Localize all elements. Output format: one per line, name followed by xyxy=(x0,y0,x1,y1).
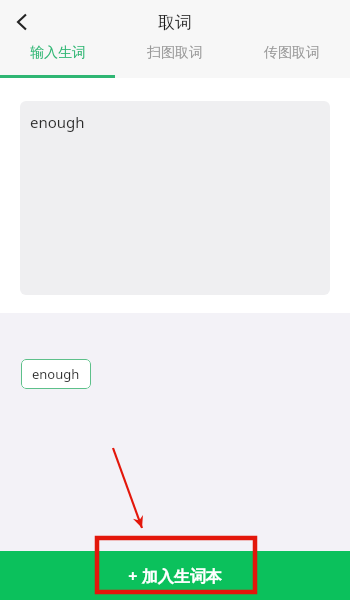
button[interactable]: enough xyxy=(21,359,91,389)
button[interactable]: 传图取词 xyxy=(233,44,350,62)
button[interactable]: 扫图取词 xyxy=(116,44,233,62)
staticText: 输入生词 xyxy=(30,44,86,62)
button[interactable]: enough xyxy=(20,101,330,295)
button[interactable]: 输入生词 xyxy=(0,44,116,62)
button[interactable]: Back xyxy=(0,0,44,44)
staticText: enough xyxy=(32,365,80,383)
staticText: 取词 xyxy=(158,12,192,33)
staticText: enough xyxy=(30,112,85,132)
staticText: 传图取词 xyxy=(264,44,320,62)
button[interactable]: + 加入生词本 xyxy=(0,551,350,600)
staticText: + 加入生词本 xyxy=(128,565,222,587)
staticText: 扫图取词 xyxy=(147,44,203,62)
